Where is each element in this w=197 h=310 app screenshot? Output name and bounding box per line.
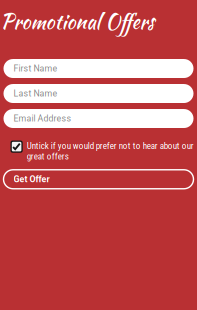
button[interactable]: Untick if you would prefer not to hear a… [10, 140, 193, 162]
staticText: Promotional Offers [0, 7, 154, 36]
button[interactable]: Get Offer [3, 170, 193, 189]
button[interactable]: Last Name [3, 84, 193, 103]
staticText: Last Name [13, 88, 57, 99]
staticText: First Name [13, 63, 57, 74]
staticText: Untick if you would prefer not to hear a… [27, 140, 194, 162]
staticText: Email Address [13, 113, 71, 124]
button[interactable]: Email Address [3, 109, 193, 128]
button[interactable]: First Name [3, 59, 193, 78]
staticText: Get Offer [13, 174, 49, 184]
